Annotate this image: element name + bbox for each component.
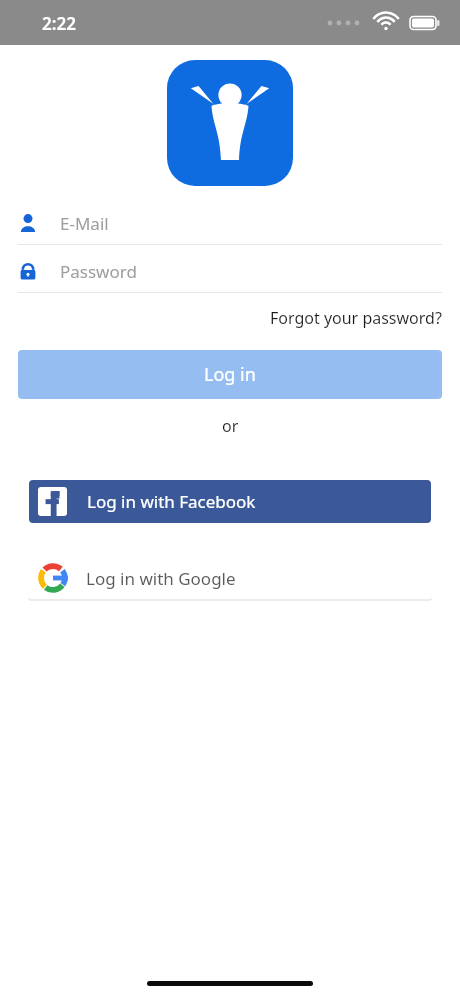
staticText: Log in with Facebook bbox=[87, 490, 256, 513]
staticText: Forgot your password? bbox=[270, 307, 442, 329]
staticText: Log in with Google bbox=[86, 567, 236, 590]
button[interactable]: Log in with Facebook bbox=[29, 480, 431, 523]
button[interactable]: Log in with Google bbox=[28, 557, 432, 599]
button[interactable]: Password bbox=[0, 249, 460, 293]
staticText: or bbox=[222, 415, 239, 437]
button[interactable]: Log in bbox=[18, 350, 442, 399]
staticText: E-Mail bbox=[60, 212, 109, 235]
button[interactable]: E-Mail bbox=[0, 200, 460, 246]
staticText: Password bbox=[60, 260, 137, 283]
staticText: 2:22 bbox=[42, 12, 76, 35]
button[interactable]: Forgot your password? bbox=[252, 303, 460, 333]
staticText: Log in bbox=[204, 362, 256, 387]
